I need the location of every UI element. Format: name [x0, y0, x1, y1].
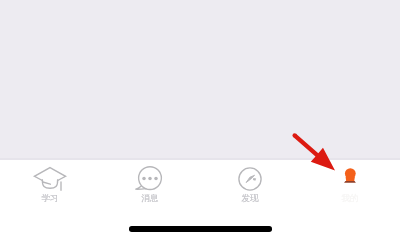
other: 学习: [0, 160, 100, 238]
other: 消息: [100, 160, 200, 238]
staticText: 学习: [0, 193, 100, 204]
other: 发现: [200, 160, 300, 238]
button[interactable]: 我的: [300, 160, 400, 238]
staticText: 发现: [200, 193, 300, 204]
button[interactable]: 学习: [0, 160, 100, 238]
button[interactable]: 发现: [200, 160, 300, 238]
button[interactable]: 消息: [100, 160, 200, 238]
other: 我的: [300, 160, 400, 238]
staticText: 消息: [100, 193, 200, 204]
